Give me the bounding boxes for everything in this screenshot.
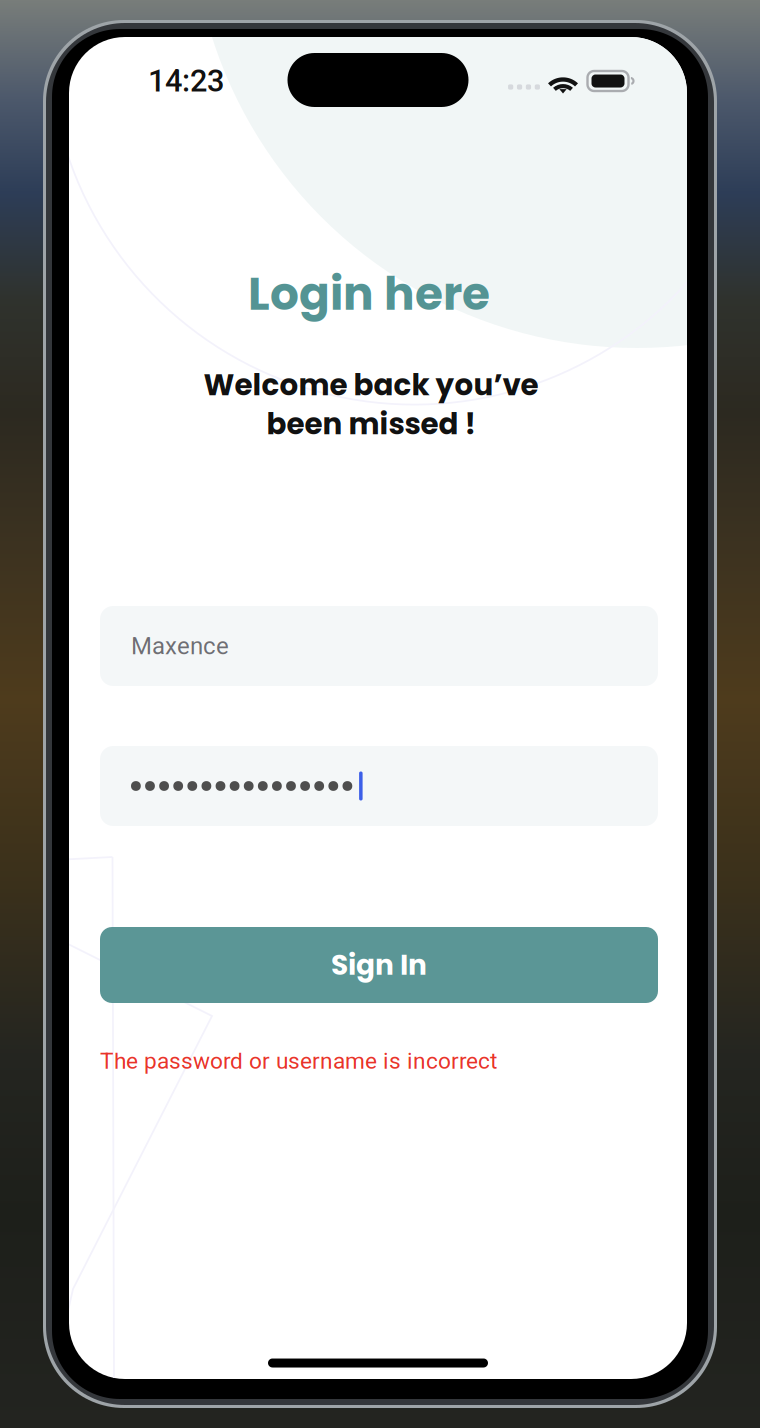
staticText: Maxence — [131, 632, 229, 660]
button[interactable]: Sign In — [100, 927, 658, 1003]
staticText: Sign In — [331, 945, 427, 985]
staticText: 14:23 — [148, 63, 224, 99]
staticText: Login here — [248, 262, 490, 326]
button[interactable] — [100, 746, 658, 826]
staticText: been missed ! — [266, 403, 475, 445]
button[interactable]: Maxence — [100, 606, 658, 686]
staticText: The password or username is incorrect — [100, 1048, 497, 1074]
staticText: Welcome back you’ve — [203, 364, 538, 406]
